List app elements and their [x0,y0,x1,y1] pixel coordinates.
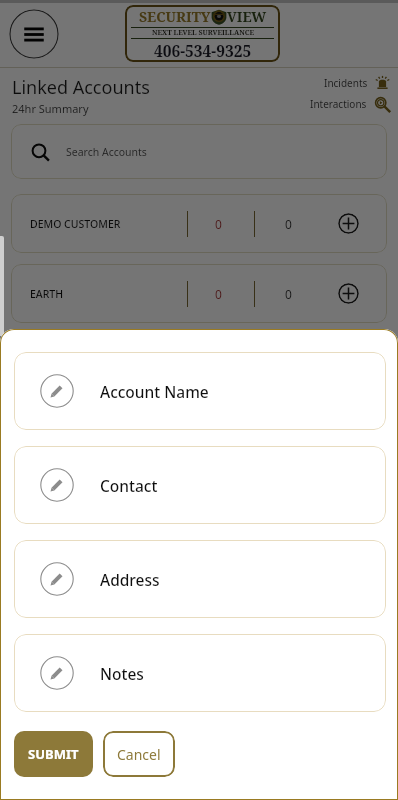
staticText: EARTH [30,287,64,301]
button[interactable]: EARTH [11,264,387,323]
button[interactable]: Interactions [310,96,390,112]
staticText: 0 [285,286,292,302]
staticText: VIEW [227,7,267,26]
button[interactable]: Menu [9,9,59,59]
staticText: Contact [100,475,158,496]
staticText: Notes [100,663,144,684]
staticText: 0 [215,216,222,232]
button[interactable]: DEMO CUSTOMER [11,194,387,253]
button[interactable]: Notes [14,634,386,712]
staticText: Account Name [100,381,209,402]
staticText: NEXT LEVEL SURVEILLANCE [152,28,254,38]
button[interactable]: Add [338,213,359,234]
button[interactable]: Incidents [324,75,390,90]
button[interactable]: Address [14,540,386,618]
staticText: DEMO CUSTOMER [30,217,121,231]
button[interactable]: Contact [14,446,386,524]
staticText: Incidents [324,76,368,90]
staticText: SUBMIT [28,745,79,763]
staticText: Cancel [117,745,161,764]
button[interactable]: Account Name [14,352,386,430]
button[interactable]: SUBMIT [14,731,93,777]
button[interactable]: Search Accounts [11,124,387,179]
staticText: 24hr Summary [12,101,89,116]
staticText: 0 [285,216,292,232]
button[interactable]: Cancel [103,731,175,777]
staticText: Linked Accounts [12,75,150,100]
staticText: Address [100,569,160,590]
button[interactable]: Add [338,283,359,304]
staticText: Search Accounts [66,145,147,159]
staticText: Interactions [310,97,367,111]
staticText: 0 [215,286,222,302]
staticText: SECURITY [139,7,211,26]
staticText: 406-534-9325 [154,40,252,61]
